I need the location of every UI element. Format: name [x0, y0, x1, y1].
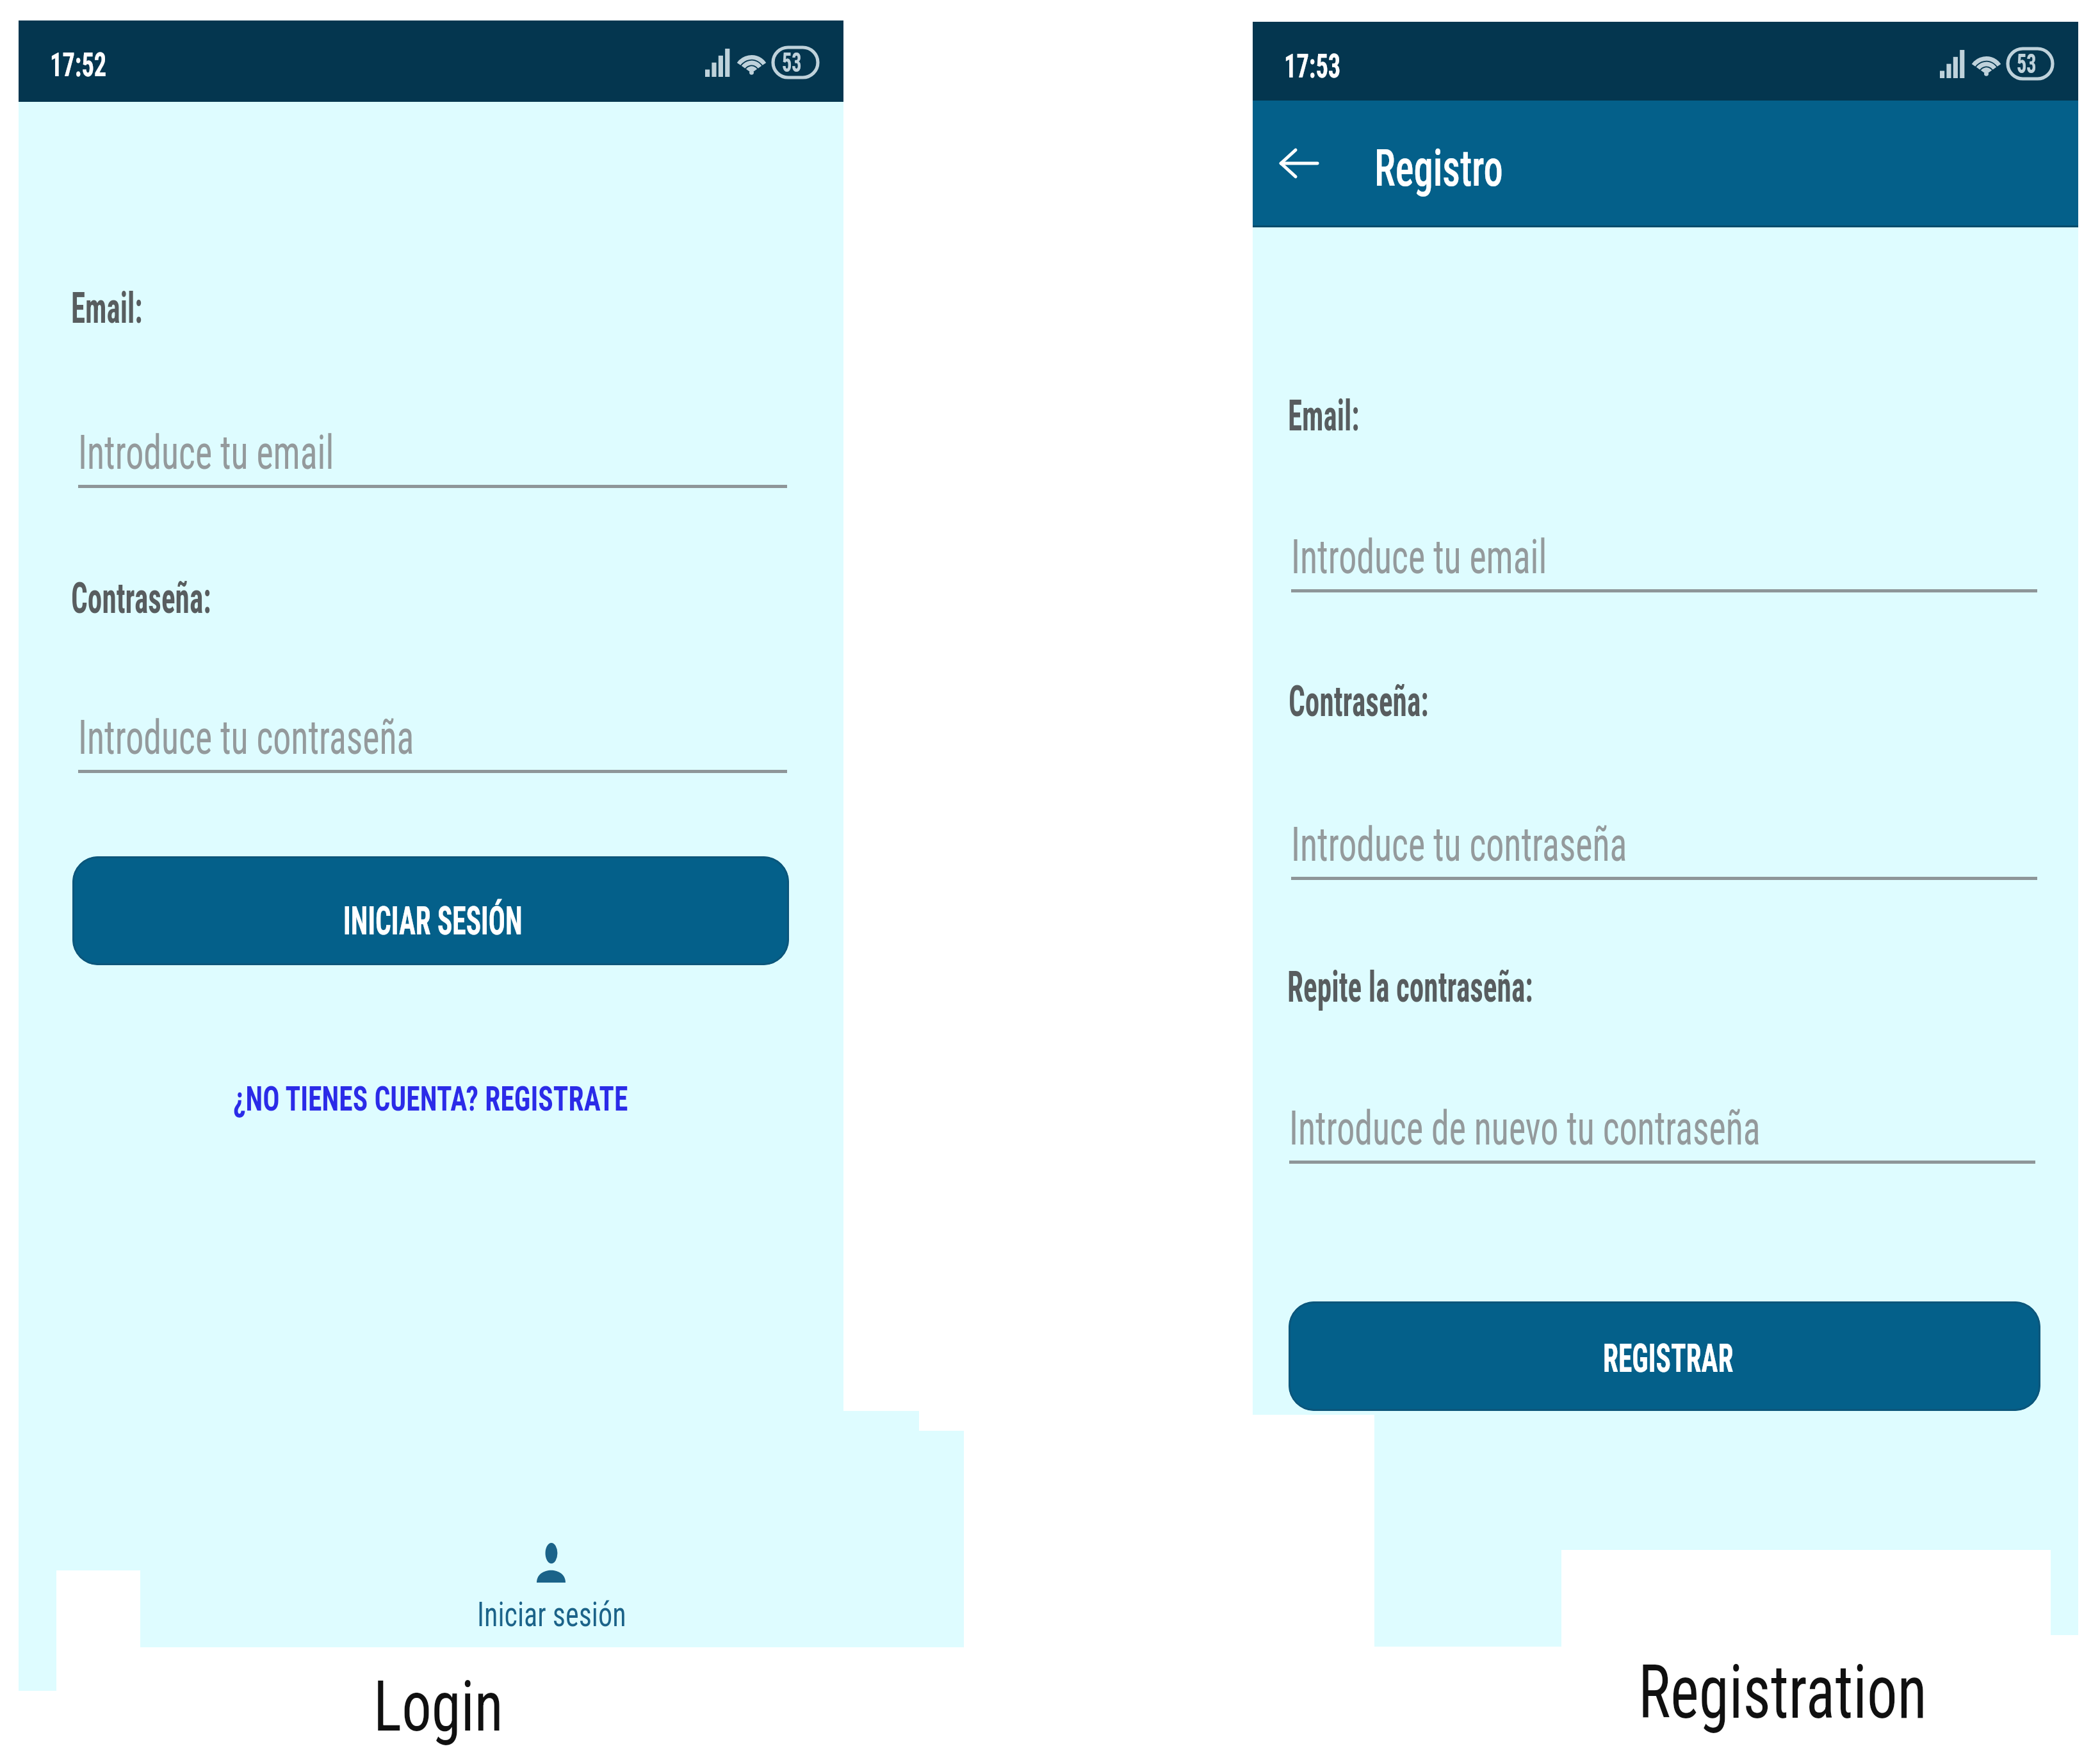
button[interactable]: INICIAR SESIÓN [72, 856, 789, 965]
button[interactable]: Introduce tu contraseña [1291, 821, 2037, 880]
staticText: 53 [2017, 48, 2037, 79]
staticText: 53 [782, 47, 802, 78]
staticText: Login [373, 1665, 504, 1748]
staticText: Registro [1374, 139, 1503, 199]
button[interactable]: Back [1266, 130, 1332, 197]
staticText: Contraseña: [1289, 677, 1429, 726]
staticText: ¿NO TIENES CUENTA? REGISTRATE [233, 1079, 628, 1119]
button[interactable]: Introduce tu contraseña [78, 714, 787, 773]
staticText: Introduce tu contraseña [78, 709, 414, 765]
button[interactable]: Introduce de nuevo tu contraseña [1289, 1105, 2035, 1164]
staticText: Registration [1638, 1648, 1927, 1736]
staticText: Introduce tu contraseña [1291, 816, 1627, 872]
staticText: Repite la contraseña: [1287, 963, 1533, 1012]
staticText: Contraseña: [71, 574, 211, 623]
button[interactable]: REGISTRAR [1289, 1301, 2040, 1411]
staticText: 17:53 [1284, 47, 1341, 86]
button[interactable]: ¿NO TIENES CUENTA? REGISTRATE [233, 1079, 646, 1131]
staticText: 17:52 [50, 46, 107, 85]
button[interactable]: Introduce tu email [78, 429, 787, 488]
staticText: Iniciar sesión [477, 1594, 626, 1634]
staticText: REGISTRAR [1603, 1335, 1733, 1381]
staticText: Introduce tu email [78, 424, 334, 480]
button[interactable]: Introduce tu email [1291, 534, 2037, 592]
button[interactable]: Iniciar sesión [428, 1522, 671, 1628]
staticText: Email: [1288, 391, 1360, 441]
staticText: INICIAR SESIÓN [343, 898, 522, 943]
staticText: Introduce tu email [1291, 528, 1547, 585]
staticText: Introduce de nuevo tu contraseña [1289, 1100, 1761, 1156]
staticText: Email: [71, 284, 143, 333]
